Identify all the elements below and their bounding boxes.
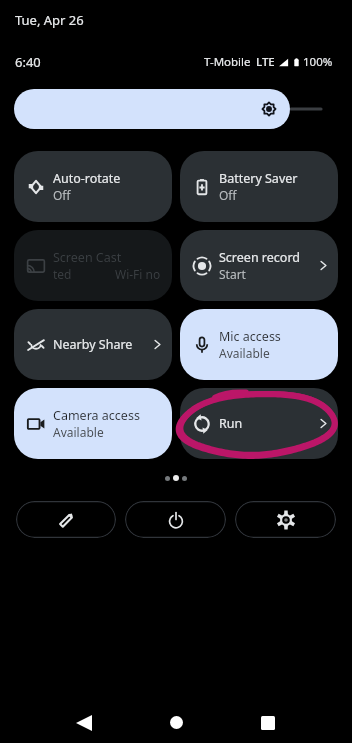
staticText: Off (219, 187, 237, 203)
staticText: ted (53, 266, 72, 282)
button[interactable]: Auto-rotate (14, 151, 172, 222)
staticText: Off (53, 187, 71, 203)
staticText: Nearby Share (53, 336, 133, 353)
staticText: Available (53, 424, 104, 440)
button[interactable]: Run (180, 388, 338, 459)
staticText: 100% (303, 54, 333, 70)
staticText: LTE (256, 54, 275, 70)
staticText: Camera access (53, 407, 140, 424)
staticText: Wi-Fi no (115, 266, 161, 282)
staticText: T-Mobile (204, 54, 251, 70)
button[interactable]: Nearby Share (14, 309, 172, 380)
staticText: Screen record (219, 249, 300, 266)
button[interactable]: Screen Cast (14, 230, 172, 301)
staticText: Run (219, 415, 243, 432)
button[interactable]: Mic access (180, 309, 338, 380)
button[interactable]: Screen record (180, 230, 338, 301)
staticText: Available (219, 345, 270, 361)
staticText: Auto-rotate (53, 170, 121, 187)
button[interactable]: Settings (235, 501, 336, 538)
staticText: Screen Cast (53, 249, 122, 266)
button[interactable]: Power (125, 501, 226, 538)
staticText: 6:40 (15, 53, 41, 71)
staticText: Mic access (219, 328, 281, 345)
staticText: Start (219, 266, 246, 282)
button[interactable]: Brightness (14, 89, 338, 129)
button[interactable]: Back (60, 699, 107, 743)
staticText: Battery Saver (219, 170, 298, 187)
button[interactable]: Recents (244, 699, 291, 743)
staticText: Tue, Apr 26 (15, 11, 84, 29)
button[interactable]: Battery Saver (180, 151, 338, 222)
button[interactable]: Edit (16, 501, 116, 538)
button[interactable]: Camera access (14, 388, 172, 459)
button[interactable]: Home (153, 699, 200, 743)
